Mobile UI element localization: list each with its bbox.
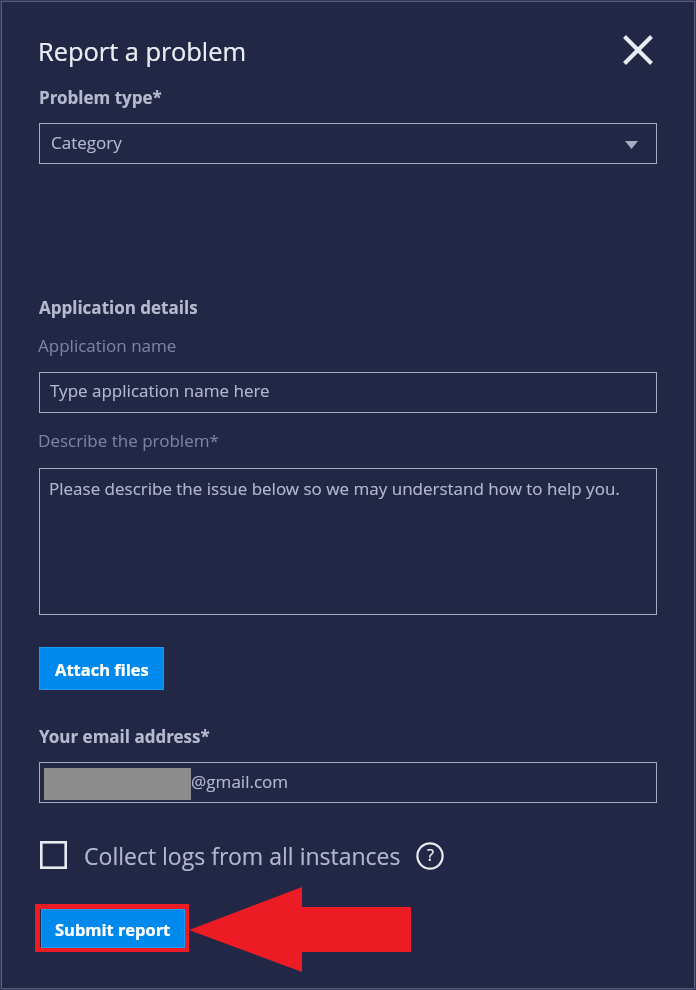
button[interactable]: Describe the problem (39, 468, 657, 615)
staticText: Problem type* (39, 86, 162, 109)
button[interactable]: Problem type (39, 123, 657, 164)
staticText: Type application name here (50, 379, 270, 402)
staticText: Please describe the issue below so we ma… (49, 477, 620, 500)
staticText: ? (427, 844, 434, 866)
staticText: Submit report (55, 918, 171, 940)
staticText: Category (51, 131, 122, 154)
staticText: Report a problem (38, 34, 247, 69)
staticText: Application name (38, 334, 177, 357)
staticText: Collect logs from all instances (84, 840, 401, 871)
button[interactable]: Collect logs from all instances (38, 838, 404, 874)
button[interactable]: Help (414, 840, 446, 872)
staticText: Describe the problem* (38, 429, 219, 452)
button[interactable]: Your email address (39, 762, 657, 803)
button[interactable]: Attach files (39, 647, 164, 690)
button[interactable]: Close (616, 28, 660, 72)
button[interactable]: Application name (39, 372, 657, 413)
staticText: Your email address* (39, 725, 210, 748)
staticText: Attach files (55, 658, 149, 680)
staticText: @gmail.com (191, 770, 289, 793)
staticText: Application details (39, 296, 198, 319)
button[interactable]: Submit report (41, 909, 185, 948)
